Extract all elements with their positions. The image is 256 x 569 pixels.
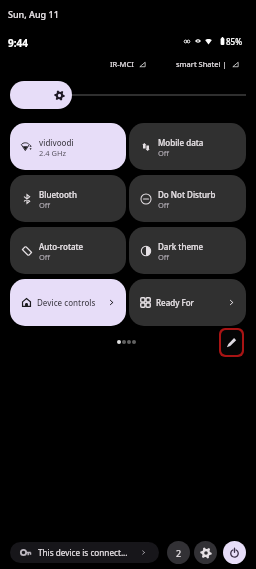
button[interactable]: Dark theme [129, 227, 246, 274]
staticText: Off [158, 148, 170, 158]
button[interactable]: vidivoodi [10, 123, 126, 170]
staticText: 2 [176, 547, 182, 559]
button[interactable]: 2 [167, 541, 190, 564]
staticText: Ready For [156, 297, 194, 308]
button[interactable]: Mobile data [129, 123, 246, 170]
staticText: smart Shatel | [176, 59, 227, 69]
button[interactable]: Edit tiles [221, 330, 242, 355]
button[interactable]: Brightness [10, 81, 72, 109]
button[interactable]: Device controls [10, 279, 126, 326]
button[interactable]: Auto-rotate [10, 227, 126, 274]
staticText: 2.4 GHz [39, 148, 67, 158]
staticText: Off [39, 252, 51, 262]
staticText: Auto-rotate [39, 241, 84, 252]
staticText: Sun, Aug 11 [8, 8, 59, 20]
staticText: Device controls [37, 297, 96, 308]
staticText: Off [158, 200, 170, 210]
staticText: Bluetooth [39, 189, 77, 200]
button[interactable]: This device is connect... [10, 542, 159, 563]
staticText: Do Not Disturb [158, 189, 216, 200]
staticText: IR-MCI [110, 59, 134, 69]
staticText: Off [39, 200, 51, 210]
staticText: vidivoodi [39, 137, 74, 148]
staticText: Off [158, 252, 170, 262]
staticText: 85% [226, 36, 242, 46]
staticText: Dark theme [158, 241, 204, 252]
button[interactable]: Bluetooth [10, 175, 126, 222]
staticText: This device is connect... [38, 547, 128, 558]
button[interactable]: Settings [194, 541, 217, 564]
button[interactable]: Power [223, 541, 246, 564]
staticText: Mobile data [158, 137, 204, 148]
button[interactable]: Ready For [129, 279, 246, 326]
staticText: 9:44 [8, 36, 28, 50]
button[interactable]: Do Not Disturb [129, 175, 246, 222]
